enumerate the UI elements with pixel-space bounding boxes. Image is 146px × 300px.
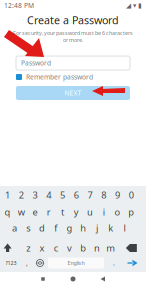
staticText: q — [5, 206, 11, 218]
button[interactable]: m — [104, 241, 117, 254]
button[interactable]: 9 — [111, 188, 124, 201]
staticText: For security, your password must be 6 ch… — [13, 29, 133, 37]
staticText: 3 — [33, 189, 38, 201]
button[interactable]: 8 — [97, 188, 110, 201]
button[interactable]: g — [63, 221, 76, 234]
button[interactable]: Back — [100, 276, 105, 281]
button[interactable]: k — [104, 221, 117, 234]
staticText: o — [115, 206, 121, 218]
button[interactable]: s — [22, 221, 35, 234]
staticText: 6 — [74, 189, 79, 201]
button[interactable]: j — [90, 221, 103, 234]
staticText: j — [96, 222, 98, 234]
staticText: c — [54, 242, 58, 254]
staticText: 7 — [88, 189, 93, 201]
staticText: 0 — [129, 189, 134, 201]
staticText: m — [106, 242, 115, 254]
staticText: . — [113, 259, 115, 267]
button[interactable]: z — [22, 241, 35, 254]
button[interactable]: 4 — [42, 188, 55, 201]
staticText: i — [103, 206, 105, 218]
button[interactable]: n — [90, 241, 103, 254]
button[interactable]: e — [29, 205, 42, 218]
staticText: g — [66, 222, 72, 234]
staticText: Password — [21, 59, 51, 67]
button[interactable]: Enter — [126, 257, 139, 269]
button[interactable]: p — [125, 205, 138, 218]
button[interactable]: English — [48, 257, 104, 268]
staticText: 4 — [46, 189, 51, 201]
staticText: u — [87, 206, 93, 218]
staticText: NEXT — [64, 89, 81, 97]
button[interactable]: 3 — [29, 188, 42, 201]
staticText: w — [18, 206, 25, 218]
button[interactable]: c — [49, 241, 62, 254]
staticText: r — [47, 206, 51, 218]
staticText: ?123 — [5, 259, 16, 267]
button[interactable]: t — [56, 205, 69, 218]
button[interactable]: f — [49, 221, 62, 234]
staticText: h — [80, 222, 86, 234]
staticText: 2 — [19, 189, 24, 201]
button[interactable]: 2 — [15, 188, 28, 201]
staticText: l — [123, 222, 125, 234]
staticText: 1 — [5, 189, 10, 201]
staticText: b — [80, 242, 86, 254]
button[interactable]: 7 — [84, 188, 97, 201]
button[interactable]: b — [77, 241, 90, 254]
staticText: e — [33, 206, 38, 218]
button[interactable]: i — [97, 205, 110, 218]
staticText: k — [108, 222, 113, 234]
button[interactable]: Switch language — [34, 257, 46, 269]
staticText: p — [128, 206, 134, 218]
button[interactable]: d — [35, 221, 48, 234]
staticText: Remember password — [26, 73, 93, 81]
staticText: 12:48 PM — [4, 1, 34, 10]
staticText: y — [74, 206, 79, 218]
button[interactable]: x — [35, 241, 48, 254]
button[interactable]: y — [70, 205, 83, 218]
button[interactable]: Remember password — [16, 73, 130, 81]
staticText: 5 — [60, 189, 65, 201]
button[interactable]: 1 — [1, 188, 14, 201]
button[interactable]: u — [84, 205, 97, 218]
button[interactable]: Password — [16, 56, 130, 70]
staticText: a — [12, 222, 17, 234]
button[interactable]: Recent apps — [41, 277, 45, 281]
staticText: v — [67, 242, 72, 254]
staticText: , — [26, 259, 28, 267]
button[interactable]: h — [77, 221, 90, 234]
button[interactable]: w — [15, 205, 28, 218]
staticText: ◢ ▾ ▮ — [126, 2, 142, 9]
button[interactable]: o — [111, 205, 124, 218]
button[interactable]: r — [42, 205, 55, 218]
staticText: s — [26, 222, 30, 234]
button[interactable]: a — [8, 221, 21, 234]
staticText: English — [67, 259, 84, 267]
button[interactable]: q — [1, 205, 14, 218]
button[interactable]: NEXT — [16, 86, 130, 100]
staticText: 9 — [115, 189, 120, 201]
staticText: d — [39, 222, 45, 234]
button[interactable]: Backspace — [124, 241, 138, 254]
button[interactable]: 6 — [70, 188, 83, 201]
staticText: f — [54, 222, 57, 234]
staticText: 8 — [101, 189, 106, 201]
staticText: z — [26, 242, 30, 254]
button[interactable]: 5 — [56, 188, 69, 201]
button[interactable]: . — [109, 257, 119, 269]
button[interactable]: v — [63, 241, 76, 254]
staticText: or more. — [63, 36, 83, 44]
button[interactable]: Home — [70, 276, 75, 281]
button[interactable]: 0 — [125, 188, 138, 201]
button[interactable]: , — [22, 257, 32, 269]
button[interactable]: l — [118, 221, 131, 234]
staticText: Create a Password — [27, 13, 119, 27]
button[interactable]: ?123 — [2, 257, 20, 269]
staticText: n — [94, 242, 100, 254]
staticText: t — [61, 206, 64, 218]
button[interactable]: Shift — [1, 241, 15, 254]
staticText: x — [39, 242, 44, 254]
